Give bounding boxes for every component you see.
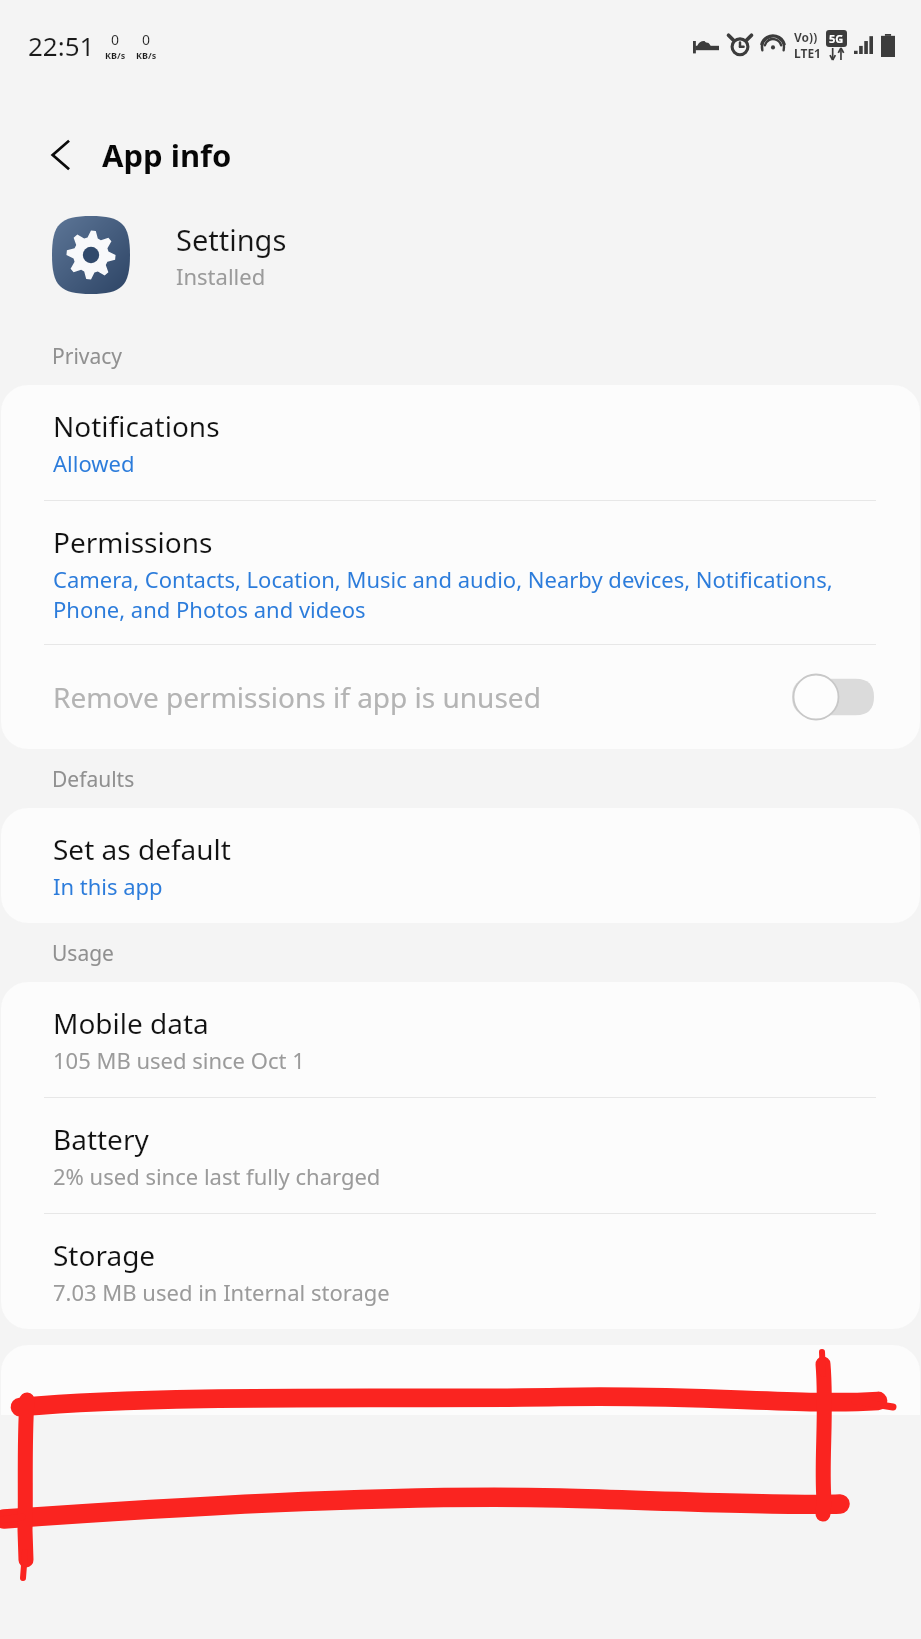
staticText: 0	[142, 30, 151, 49]
staticText: App info	[102, 134, 232, 176]
staticText: 2% used since last fully charged	[53, 1161, 381, 1191]
staticText: Installed	[176, 261, 266, 291]
staticText: Privacy	[52, 342, 123, 371]
staticText: LTE1	[794, 45, 821, 61]
button[interactable]: Mobile data	[1, 982, 920, 1097]
staticText: Storage	[53, 1236, 156, 1274]
staticText: Camera, Contacts, Location, Music and au…	[53, 564, 868, 624]
button[interactable]: Back	[32, 126, 90, 184]
staticText: 0	[111, 30, 120, 49]
staticText: Allowed	[53, 448, 135, 478]
staticText: Set as default	[53, 830, 231, 868]
staticText: Battery	[53, 1120, 149, 1158]
button[interactable]: Permissions	[1, 501, 920, 644]
button[interactable]: Settings	[0, 210, 921, 300]
staticText: 22:51	[28, 28, 95, 63]
staticText: Settings	[176, 220, 287, 259]
staticText: 105 MB used since Oct 1	[53, 1045, 305, 1075]
staticText: 5G	[829, 31, 844, 46]
staticText: In this app	[53, 871, 163, 901]
staticText: Defaults	[52, 765, 135, 794]
staticText: 7.03 MB used in Internal storage	[53, 1277, 390, 1307]
staticText: Mobile data	[53, 1004, 209, 1042]
staticText: Remove permissions if app is unused	[53, 678, 541, 716]
staticText: Usage	[52, 939, 114, 968]
button[interactable]: Storage	[1, 1214, 920, 1329]
button[interactable]: Set as default	[1, 808, 920, 923]
staticText: KB/s	[136, 49, 157, 61]
button[interactable]: Remove permissions if app is unused	[1, 645, 920, 749]
staticText: Vo))	[794, 29, 818, 45]
staticText: Permissions	[53, 523, 213, 561]
staticText: KB/s	[105, 49, 126, 61]
staticText: Notifications	[53, 407, 220, 445]
button[interactable]: Battery	[1, 1098, 920, 1213]
button[interactable]: Notifications	[1, 385, 920, 500]
